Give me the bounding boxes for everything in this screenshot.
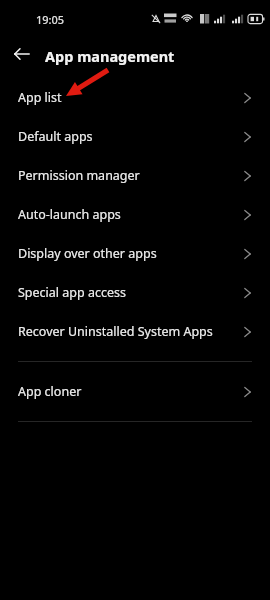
staticText: Special app access <box>18 284 240 301</box>
staticText: Permission manager <box>18 167 240 184</box>
staticText: Recover Uninstalled System Apps <box>18 323 240 340</box>
button[interactable]: Permission manager <box>0 156 270 195</box>
button[interactable]: Special app access <box>0 273 270 312</box>
button[interactable]: App cloner <box>0 372 270 411</box>
staticText: Auto-launch apps <box>18 206 240 223</box>
button[interactable]: Recover Uninstalled System Apps <box>0 312 270 351</box>
staticText: Default apps <box>18 128 240 145</box>
button[interactable]: Display over other apps <box>0 234 270 273</box>
staticText: App cloner <box>18 383 240 400</box>
button[interactable]: Default apps <box>0 117 270 156</box>
button[interactable]: Auto-launch apps <box>0 195 270 234</box>
staticText: App list <box>18 89 240 106</box>
staticText: App management <box>45 46 175 66</box>
button[interactable]: Back <box>8 40 36 68</box>
staticText: 19:05 <box>36 12 65 27</box>
button[interactable]: App list <box>0 78 270 117</box>
staticText: Display over other apps <box>18 245 240 262</box>
